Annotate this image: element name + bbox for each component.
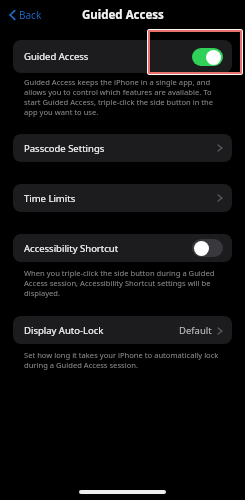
staticText: Passcode Settings: [24, 142, 105, 155]
staticText: Default: [179, 324, 212, 337]
staticText: Display Auto-Lock: [24, 324, 104, 337]
staticText: Set how long it takes your iPhone to aut…: [24, 350, 222, 370]
button[interactable]: Time Limits: [13, 184, 232, 212]
button[interactable]: Toggle off: [192, 239, 223, 257]
button[interactable]: Back: [7, 5, 44, 25]
staticText: When you triple-click the side button du…: [24, 268, 222, 298]
button[interactable]: Toggle on: [192, 48, 223, 66]
button[interactable]: Accessibility Shortcut: [13, 234, 232, 262]
staticText: Guided Access: [82, 7, 164, 23]
staticText: Back: [19, 8, 42, 22]
button[interactable]: Display Auto-Lock: [13, 316, 232, 344]
staticText: Accessibility Shortcut: [24, 242, 119, 255]
button[interactable]: Passcode Settings: [13, 134, 232, 162]
staticText: Time Limits: [24, 192, 76, 205]
staticText: Guided Access: [24, 50, 89, 63]
button[interactable]: Guided Access: [13, 40, 232, 73]
staticText: Guided Access keeps the iPhone in a sing…: [24, 77, 222, 117]
